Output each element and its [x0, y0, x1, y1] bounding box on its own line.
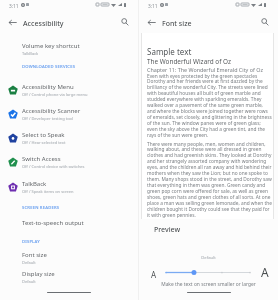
staticText: Default: [139, 255, 278, 261]
button[interactable]: Back: [144, 15, 159, 30]
staticText: Chapter 11: The Wonderful Emerald City o…: [147, 66, 264, 73]
staticText: TalkBack: [22, 51, 39, 56]
staticText: Font size: [162, 19, 192, 29]
button[interactable]: Text-to-speech output: [0, 218, 138, 229]
button[interactable]: Display size: [0, 269, 138, 286]
staticText: Font size: [22, 251, 47, 259]
staticText: Default: [22, 260, 36, 265]
staticText: DOWNLOADED SERVICES: [22, 64, 76, 70]
button[interactable]: Accessibility Scanner: [0, 103, 138, 125]
button[interactable]: Search: [117, 14, 132, 29]
button[interactable]: Font size slider: [160, 266, 252, 278]
staticText: Display size: [22, 270, 55, 278]
staticText: Off / Control device with switches: [22, 164, 85, 169]
staticText: 3:11: [148, 3, 158, 10]
staticText: Volume key shortcut: [22, 42, 80, 50]
staticText: Accessibility: [23, 19, 64, 29]
button[interactable]: Accessibility Menu: [0, 79, 138, 101]
staticText: Off / Speak items on screen: [22, 189, 74, 194]
staticText: Off / Developer testing tool: [22, 116, 74, 121]
button[interactable]: Switch Access: [0, 151, 138, 173]
button[interactable]: Select to Speak: [0, 127, 138, 149]
staticText: Sample text: [147, 46, 192, 57]
staticText: Text-to-speech output: [22, 219, 84, 227]
staticText: There were many people, men, women and c…: [147, 141, 272, 219]
staticText: The Wonderful Wizard of Oz: [147, 57, 232, 66]
button[interactable]: Volume key shortcut: [0, 41, 138, 58]
staticText: Switch Access: [22, 155, 61, 163]
staticText: Default: [22, 279, 36, 284]
staticText: A: [151, 269, 157, 280]
staticText: Accessibility Scanner: [22, 107, 81, 115]
staticText: TalkBack: [22, 180, 47, 188]
staticText: Select to Speak: [22, 131, 65, 139]
button[interactable]: Font size: [0, 250, 138, 267]
button[interactable]: Back: [5, 15, 20, 30]
staticText: 3:11: [9, 3, 19, 10]
button[interactable]: TalkBack: [0, 176, 138, 198]
staticText: Preview: [154, 225, 181, 235]
staticText: Even with eyes protected by the green sp…: [147, 73, 272, 139]
staticText: Accessibility Menu: [22, 83, 74, 91]
button[interactable]: Search: [257, 14, 272, 29]
staticText: SCREEN READERS: [22, 205, 60, 211]
staticText: Off / Control phone via large menu: [22, 92, 88, 97]
staticText: DISPLAY: [22, 239, 40, 245]
staticText: Off / Hear selected text: [22, 140, 66, 145]
staticText: A: [261, 264, 269, 280]
staticText: Make the text on screen smaller or large…: [139, 281, 278, 288]
